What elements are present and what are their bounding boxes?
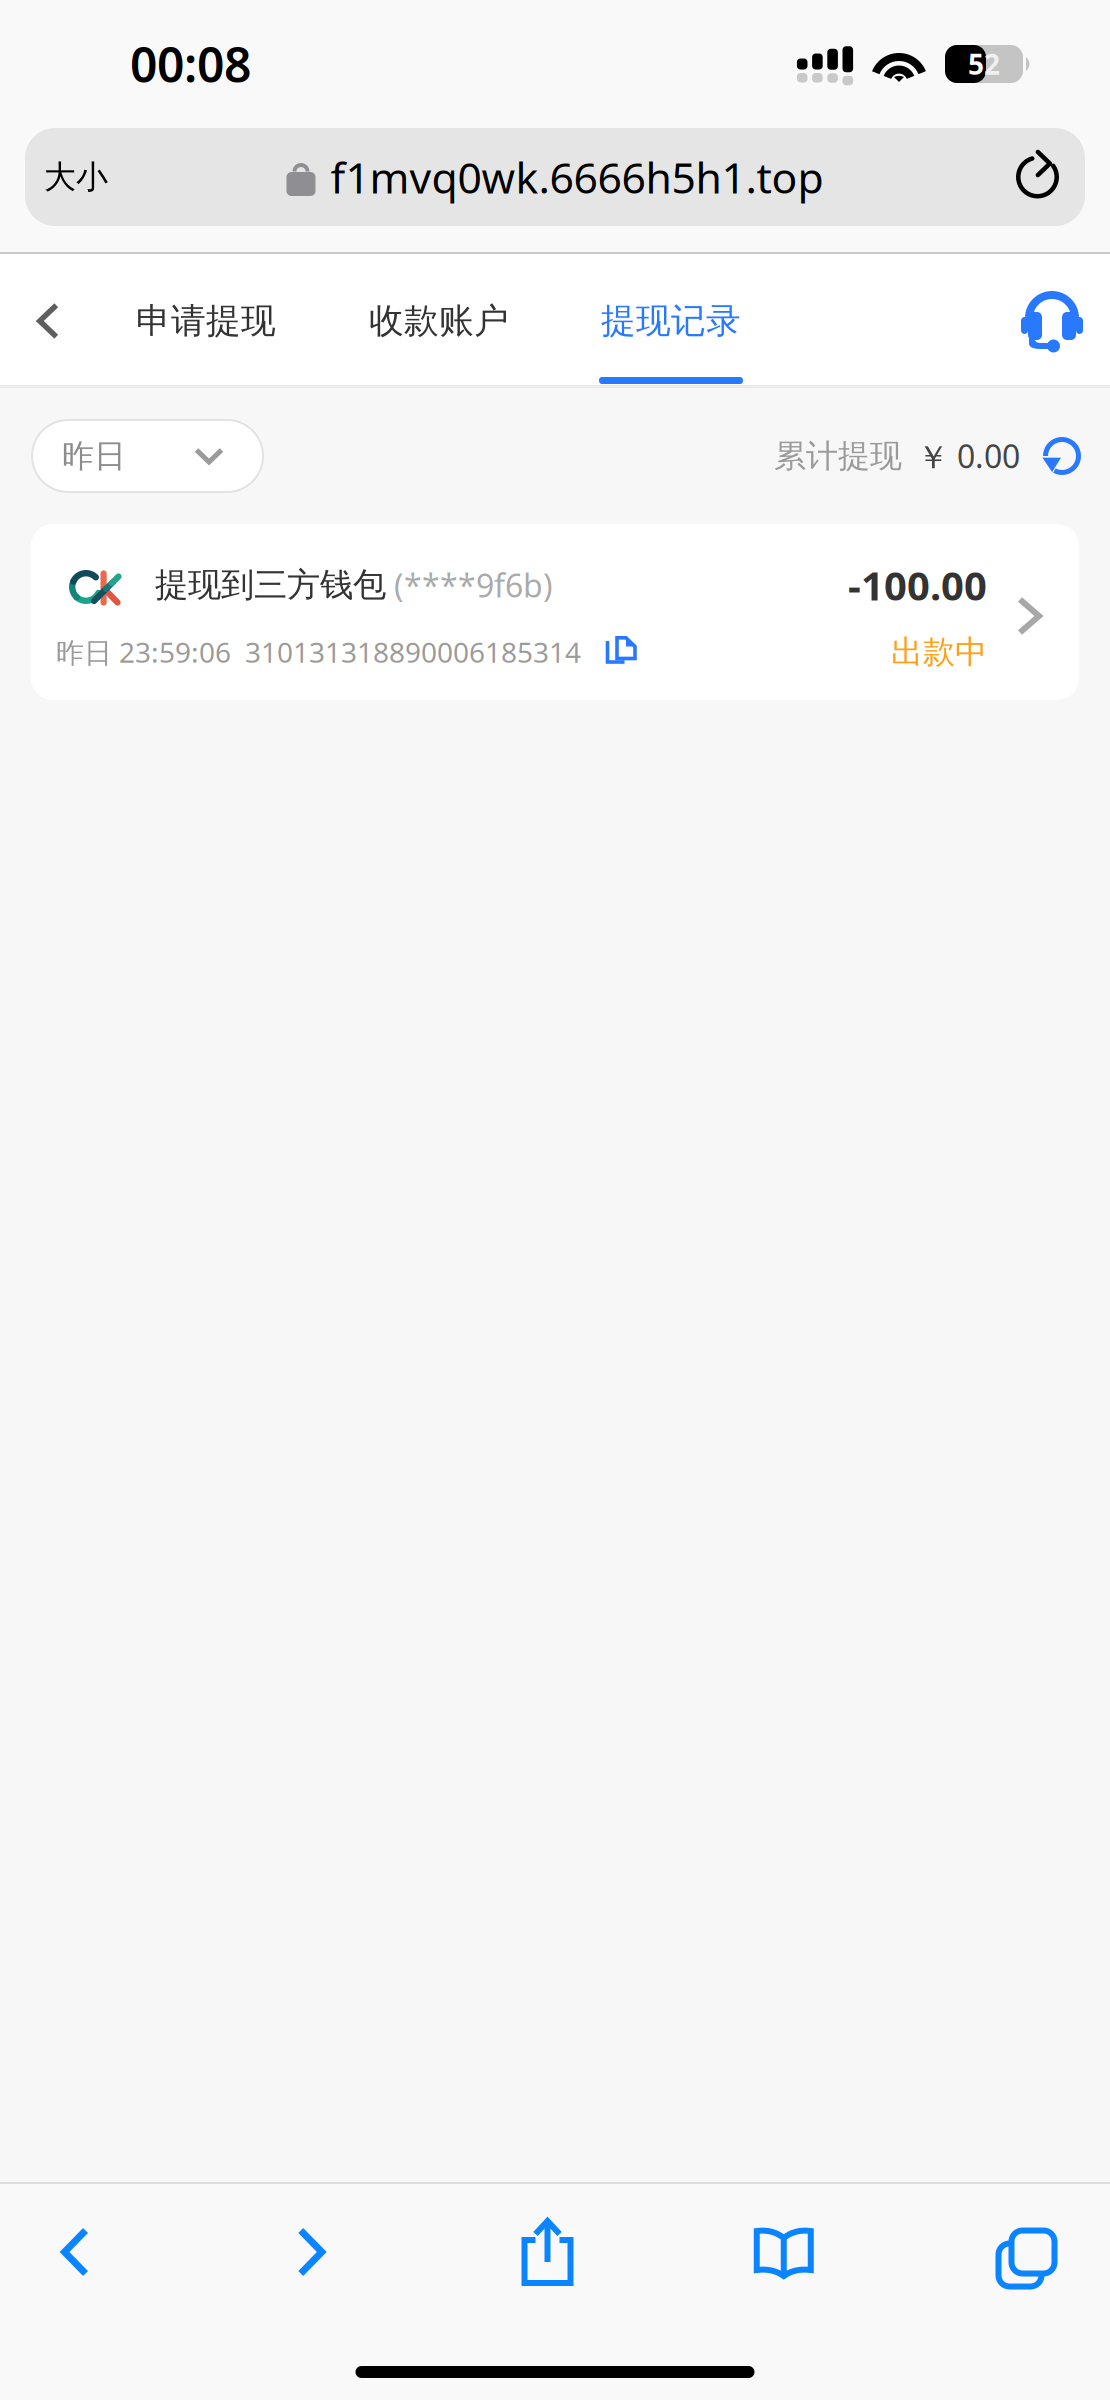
staticText: 昨日 23:59:06 310131318890006185314 [56, 633, 581, 671]
button[interactable]: Forward [256, 2196, 366, 2308]
button[interactable]: 提现记录 [599, 254, 743, 388]
button[interactable]: 昨日 [32, 420, 263, 492]
button[interactable]: 收款账户 [369, 254, 509, 388]
button[interactable]: Bookmarks [729, 2196, 839, 2308]
button[interactable]: Customer service [1020, 254, 1110, 388]
staticText: 00:08 [130, 32, 251, 96]
button[interactable]: Back [0, 254, 136, 388]
button[interactable]: Refresh [1020, 436, 1082, 476]
staticText: 申请提现 [136, 300, 276, 342]
button[interactable]: Share [492, 2196, 602, 2308]
button[interactable]: Tabs [965, 2196, 1075, 2308]
staticText: 提现记录 [601, 300, 741, 342]
staticText: ￥ 0.00 [917, 435, 1020, 477]
staticText: 2 [984, 45, 1000, 83]
staticText: 大小 [44, 157, 108, 197]
button[interactable]: 申请提现 [136, 254, 276, 388]
button[interactable]: 大小 [25, 128, 131, 226]
button[interactable]: Back [20, 2196, 130, 2308]
staticText: -100.00 [848, 558, 987, 611]
staticText: f1mvq0wk.6666h5h1.top [330, 149, 823, 205]
staticText: 提现到三方钱包 [155, 564, 386, 605]
staticText: 出款中 [891, 632, 987, 672]
staticText: 累计提现 [774, 436, 902, 476]
staticText: 收款账户 [369, 300, 509, 342]
staticText: 昨日 [62, 436, 126, 476]
staticText: 5 [968, 45, 984, 83]
staticText: (****9f6b) [386, 564, 553, 606]
button[interactable]: 提现到三方钱包 [31, 524, 1079, 700]
button[interactable]: Reload [993, 128, 1085, 226]
